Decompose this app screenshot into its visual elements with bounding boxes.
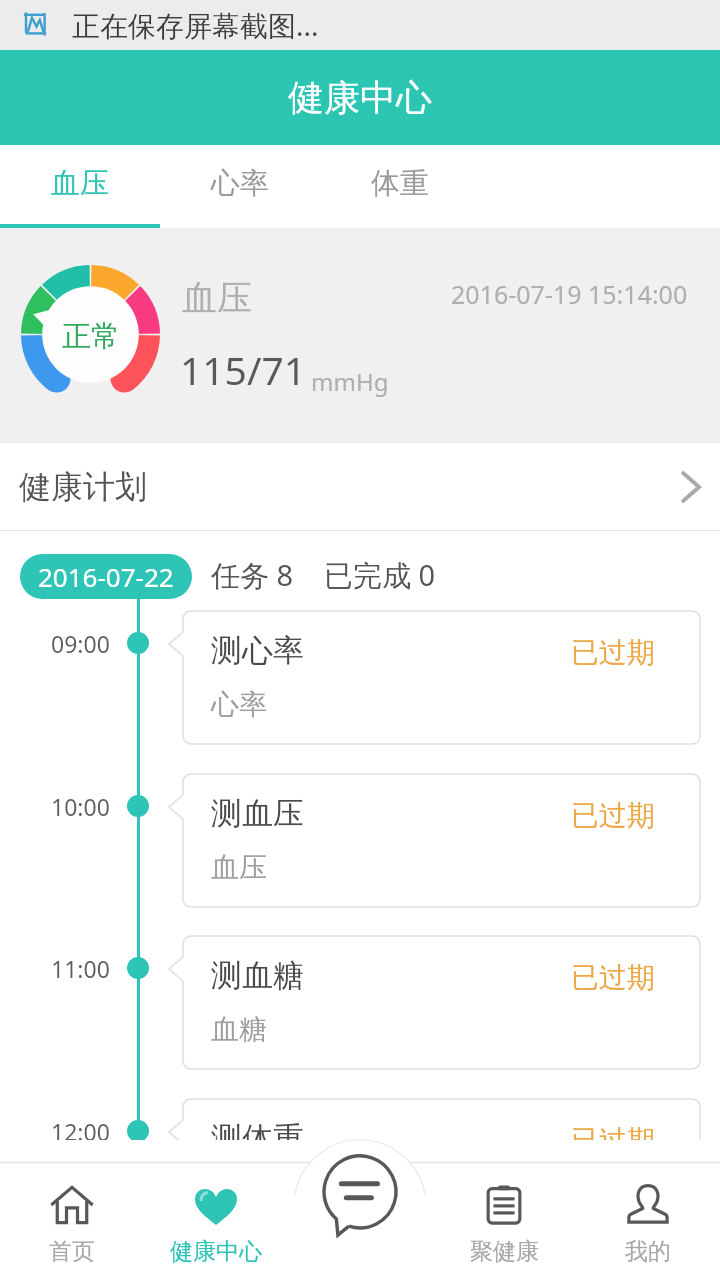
staticText: 正常 xyxy=(62,318,120,355)
staticText: 体重 xyxy=(371,165,429,202)
staticText: 115/71 xyxy=(180,343,307,396)
staticText: 2016-07-22 xyxy=(38,559,174,594)
staticText: 测血压 xyxy=(211,794,304,833)
staticText: 已过期 xyxy=(571,798,655,833)
button[interactable]: 首页 xyxy=(0,1162,144,1280)
staticText: 已完成 0 xyxy=(324,555,436,595)
staticText: 测心率 xyxy=(211,631,304,670)
other: Open health plan xyxy=(661,467,701,507)
staticText: 已过期 xyxy=(571,1123,655,1140)
staticText: 测血糖 xyxy=(211,956,304,995)
button[interactable]: 2016-07-22 xyxy=(20,554,192,599)
staticText: 12:00 xyxy=(51,1116,110,1140)
staticText: 血糖 xyxy=(211,1012,267,1047)
other: Screenshot xyxy=(20,10,50,40)
button[interactable]: 测心率 xyxy=(169,611,700,744)
button[interactable]: Messages xyxy=(312,1155,408,1251)
staticText: 聚健康 xyxy=(470,1237,539,1266)
button[interactable]: 我的 xyxy=(576,1162,720,1280)
staticText: 已过期 xyxy=(571,960,655,995)
staticText: 09:00 xyxy=(51,628,110,659)
staticText: 健康计划 xyxy=(19,467,147,507)
staticText: mmHg xyxy=(311,365,389,398)
staticText: 血压 xyxy=(182,276,252,320)
button[interactable]: 健康中心 xyxy=(144,1162,288,1280)
staticText: 任务 8 xyxy=(211,555,294,595)
staticText: 正在保存屏幕截图... xyxy=(72,6,319,44)
staticText: 我的 xyxy=(625,1237,671,1266)
staticText: 10:00 xyxy=(51,791,110,822)
staticText: 血压 xyxy=(51,165,109,202)
staticText: 测体重 xyxy=(211,1119,304,1140)
staticText: 心率 xyxy=(211,687,267,722)
button[interactable]: 血压 xyxy=(0,145,160,228)
button[interactable]: 测体重 xyxy=(169,1099,700,1140)
button[interactable]: 测血压 xyxy=(169,774,700,907)
staticText: 心率 xyxy=(211,165,269,202)
staticText: 健康中心 xyxy=(170,1237,262,1266)
staticText: 健康中心 xyxy=(288,75,432,120)
button[interactable]: 体重 xyxy=(320,145,480,228)
staticText: 血压 xyxy=(211,850,267,885)
button[interactable]: 健康计划 xyxy=(0,443,720,530)
staticText: 已过期 xyxy=(571,635,655,670)
staticText: 11:00 xyxy=(51,953,110,984)
button[interactable]: 测血糖 xyxy=(169,936,700,1069)
staticText: 2016-07-19 15:14:00 xyxy=(451,277,688,311)
button[interactable]: 聚健康 xyxy=(432,1162,576,1280)
button[interactable]: 心率 xyxy=(160,145,320,228)
staticText: 首页 xyxy=(49,1237,95,1266)
